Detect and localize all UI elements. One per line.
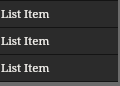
button[interactable]: List Item: [0, 55, 118, 81]
staticText: List Item: [1, 6, 50, 22]
button[interactable]: List Item: [0, 1, 118, 27]
staticText: List Item: [1, 33, 50, 49]
button[interactable]: List Item: [0, 28, 118, 54]
staticText: List Item: [1, 60, 50, 76]
